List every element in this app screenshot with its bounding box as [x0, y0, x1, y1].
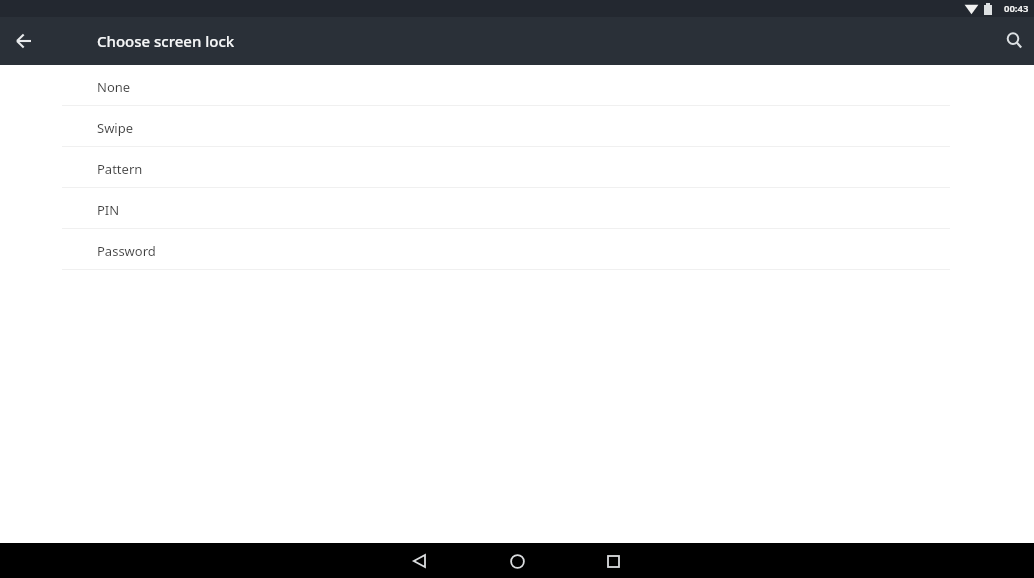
staticText: Swipe [97, 119, 134, 137]
button[interactable]: None [0, 65, 1034, 106]
staticText: PIN [97, 201, 120, 219]
button[interactable]: Password [0, 229, 1034, 270]
button[interactable] [597, 545, 629, 577]
staticText: 00:43 [1004, 2, 1029, 15]
button[interactable]: PIN [0, 188, 1034, 229]
staticText: Choose screen lock [97, 31, 235, 51]
staticText: None [97, 78, 131, 96]
button[interactable] [0, 17, 48, 65]
staticText: Pattern [97, 160, 143, 178]
button[interactable]: Pattern [0, 147, 1034, 188]
button[interactable] [501, 545, 533, 577]
button[interactable]: Swipe [0, 106, 1034, 147]
staticText: Password [97, 242, 156, 260]
button[interactable] [403, 545, 435, 577]
button[interactable] [994, 17, 1034, 65]
